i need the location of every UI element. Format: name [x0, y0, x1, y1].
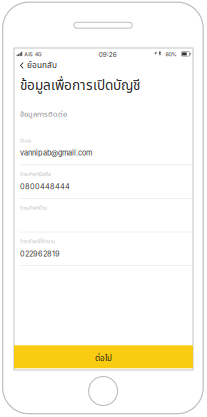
staticText: โทรศัพท์ที่ทำงาน [20, 237, 55, 246]
staticText: โทรศัพท์บ้าน [20, 204, 47, 212]
staticText: โทรศัพท์มือถือ [20, 170, 51, 179]
staticText: ข้อมูลการติดต่อ [20, 109, 67, 120]
staticText: 0800448444 [20, 182, 70, 191]
staticText: 09:26 [99, 51, 117, 58]
staticText: ข้อมูลเพื่อการเปิดบัญชี [20, 75, 140, 96]
staticText: อีเมล [20, 136, 31, 145]
staticText: 4G [35, 51, 42, 58]
staticText: AIS [24, 51, 32, 58]
staticText: 60% [165, 51, 176, 58]
staticText: vannipab@gmail.com [20, 148, 92, 157]
button[interactable]: ย้อนกลับ [14, 58, 63, 73]
staticText: ย้อนกลับ [27, 59, 57, 72]
staticText: ต่อไป [95, 352, 112, 365]
staticText: 022962819 [20, 249, 60, 258]
button[interactable]: ต่อไป [14, 345, 193, 368]
